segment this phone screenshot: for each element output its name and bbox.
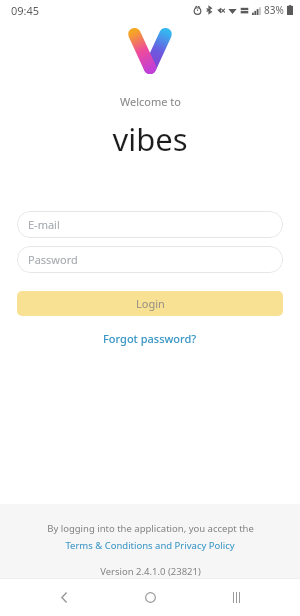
staticText: 83% bbox=[264, 3, 284, 17]
staticText: Terms & Conditions and Privacy Policy bbox=[65, 539, 235, 552]
staticText: Forgot password? bbox=[103, 331, 197, 346]
button[interactable]: Password bbox=[17, 246, 283, 273]
button[interactable]: Forgot password? bbox=[95, 328, 205, 349]
button[interactable]: Login bbox=[17, 291, 283, 316]
button[interactable]: Terms & Conditions and Privacy Policy bbox=[61, 538, 239, 553]
staticText: Password bbox=[28, 252, 78, 267]
button[interactable]: Home bbox=[128, 578, 172, 616]
staticText: Welcome to bbox=[120, 94, 181, 109]
staticText: vibes bbox=[112, 118, 188, 160]
staticText: Version 2.4.1.0 (23821) bbox=[100, 565, 201, 578]
button[interactable]: E-mail bbox=[17, 211, 283, 238]
staticText: Login bbox=[136, 296, 165, 311]
staticText: By logging into the application, you acc… bbox=[47, 522, 254, 535]
button[interactable]: Recent apps bbox=[214, 578, 258, 616]
button[interactable]: Back bbox=[42, 578, 86, 616]
staticText: 09:45 bbox=[11, 3, 40, 18]
staticText: E-mail bbox=[28, 217, 60, 232]
